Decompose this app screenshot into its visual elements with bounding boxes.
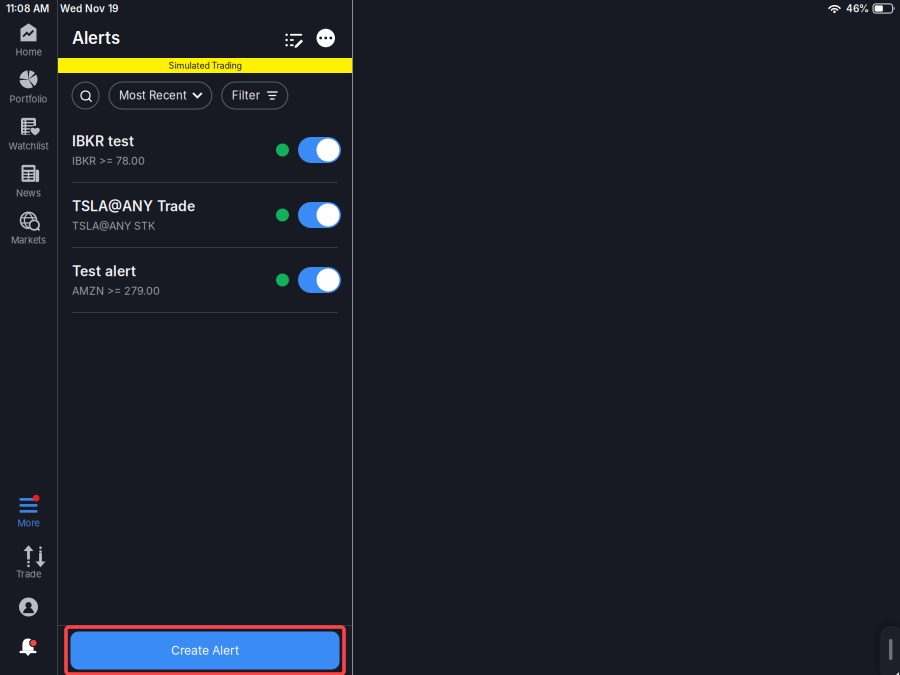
staticText: Portfolio: [9, 93, 47, 105]
button[interactable]: IBKR test: [58, 118, 352, 182]
staticText: TSLA@ANY STK: [72, 219, 155, 232]
staticText: Create Alert: [171, 643, 239, 658]
staticText: Alerts: [72, 28, 120, 48]
button[interactable]: More options: [305, 29, 335, 47]
button[interactable]: Portfolio: [0, 64, 57, 111]
staticText: Trade: [16, 568, 41, 580]
staticText: AMZN >= 279.00: [72, 284, 160, 297]
button[interactable]: Alerts: [0, 634, 57, 654]
button[interactable]: News: [0, 158, 57, 205]
button[interactable]: Markets: [0, 205, 57, 252]
staticText: Test alert: [72, 263, 136, 279]
button[interactable]: Watchlist: [0, 111, 57, 158]
staticText: 11:08 AM: [6, 2, 49, 15]
button[interactable]: TSLA@ANY Trade: [58, 183, 352, 247]
staticText: TSLA@ANY Trade: [72, 198, 195, 214]
staticText: More: [17, 517, 39, 529]
staticText: News: [16, 187, 41, 199]
button[interactable]: Test alert: [58, 248, 352, 312]
button[interactable]: Account: [0, 596, 57, 618]
button[interactable]: Most Recent: [109, 82, 212, 109]
staticText: Most Recent: [119, 89, 187, 102]
button[interactable]: Edit list: [277, 23, 305, 53]
staticText: Filter: [232, 89, 260, 102]
staticText: IBKR test: [72, 133, 134, 149]
button[interactable]: Filter: [222, 82, 288, 109]
staticText: Home: [15, 46, 41, 58]
staticText: Simulated Trading: [168, 60, 241, 71]
staticText: Markets: [11, 234, 46, 246]
button[interactable]: Search: [72, 82, 99, 109]
staticText: 46%: [846, 2, 869, 15]
button[interactable]: Trade: [0, 537, 57, 584]
staticText: Watchlist: [8, 140, 48, 152]
button[interactable]: Create Alert: [60, 626, 350, 675]
button[interactable]: More: [0, 488, 57, 535]
staticText: IBKR >= 78.00: [72, 154, 145, 167]
staticText: Wed Nov 19: [60, 2, 118, 15]
button[interactable]: Home: [0, 17, 57, 64]
